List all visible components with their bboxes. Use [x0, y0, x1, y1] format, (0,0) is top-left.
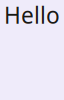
staticText: Hello	[4, 0, 60, 30]
